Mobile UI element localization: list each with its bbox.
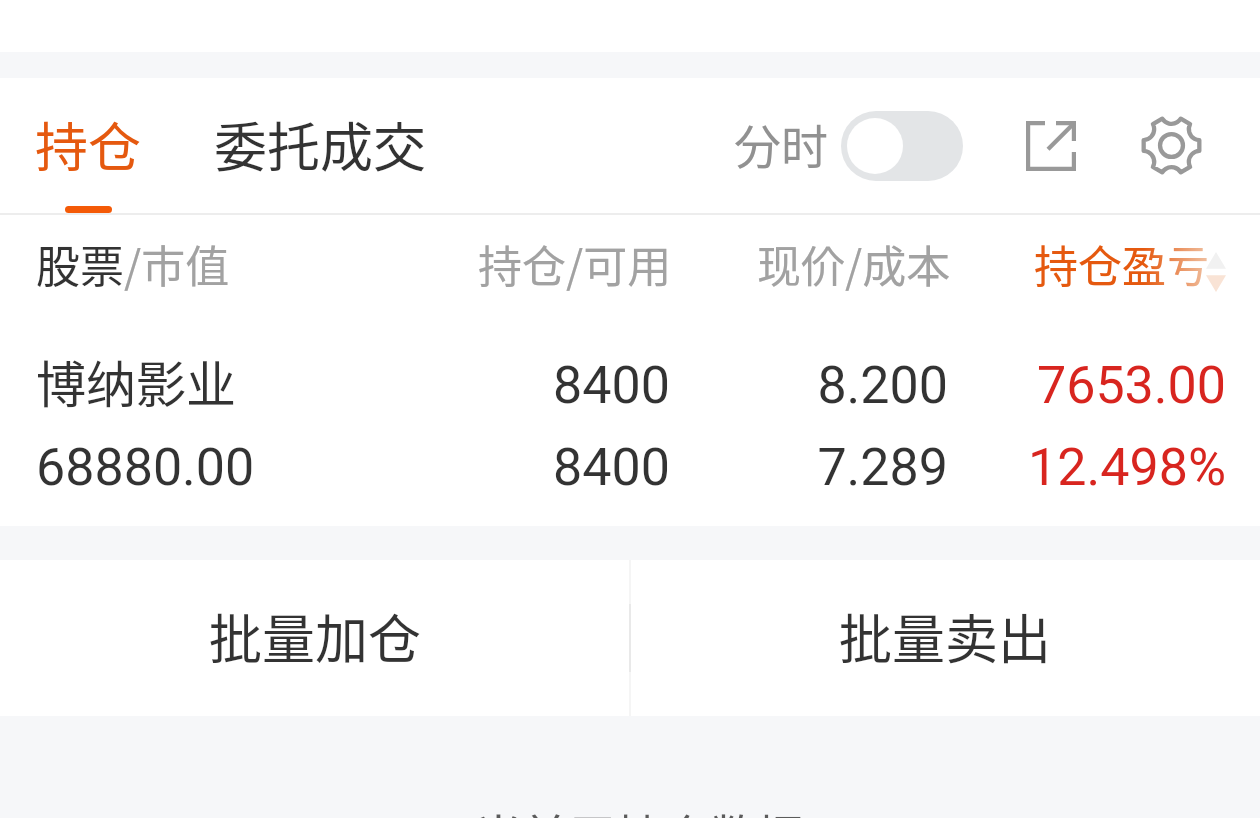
- staticText: 当前无持仓数据: [475, 799, 804, 818]
- button[interactable]: 博纳影业: [0, 320, 1260, 520]
- staticText: 持仓盈亏: [1034, 232, 1210, 294]
- button[interactable]: 持仓盈亏: [1024, 228, 1260, 290]
- staticText: 委托成交: [214, 106, 426, 183]
- button[interactable]: 现价/成本: [757, 232, 951, 296]
- staticText: 12.498%: [986, 437, 1226, 498]
- staticText: 持仓: [35, 106, 141, 183]
- staticText: 博纳影业: [36, 345, 236, 417]
- staticText: 分时: [734, 109, 828, 177]
- staticText: 8400: [430, 437, 670, 498]
- button[interactable]: 批量卖出: [630, 560, 1260, 716]
- staticText: 批量加仓: [209, 598, 421, 675]
- staticText: 8.200: [707, 355, 948, 416]
- staticText: 7653.00: [986, 355, 1226, 416]
- button[interactable]: 股票/市值: [36, 232, 230, 296]
- button[interactable]: 持仓: [8, 86, 166, 214]
- button[interactable]: 设置: [1134, 108, 1209, 183]
- button[interactable]: 批量加仓: [0, 560, 630, 716]
- staticText: 批量卖出: [839, 598, 1051, 675]
- staticText: 7.289: [707, 437, 948, 498]
- button[interactable]: 分时: [716, 96, 978, 196]
- button[interactable]: 分享: [1013, 108, 1088, 183]
- button[interactable]: 委托成交: [186, 86, 450, 214]
- staticText: 8400: [430, 355, 670, 416]
- staticText: 68880.00: [36, 437, 255, 498]
- button[interactable]: 持仓/可用: [478, 232, 672, 296]
